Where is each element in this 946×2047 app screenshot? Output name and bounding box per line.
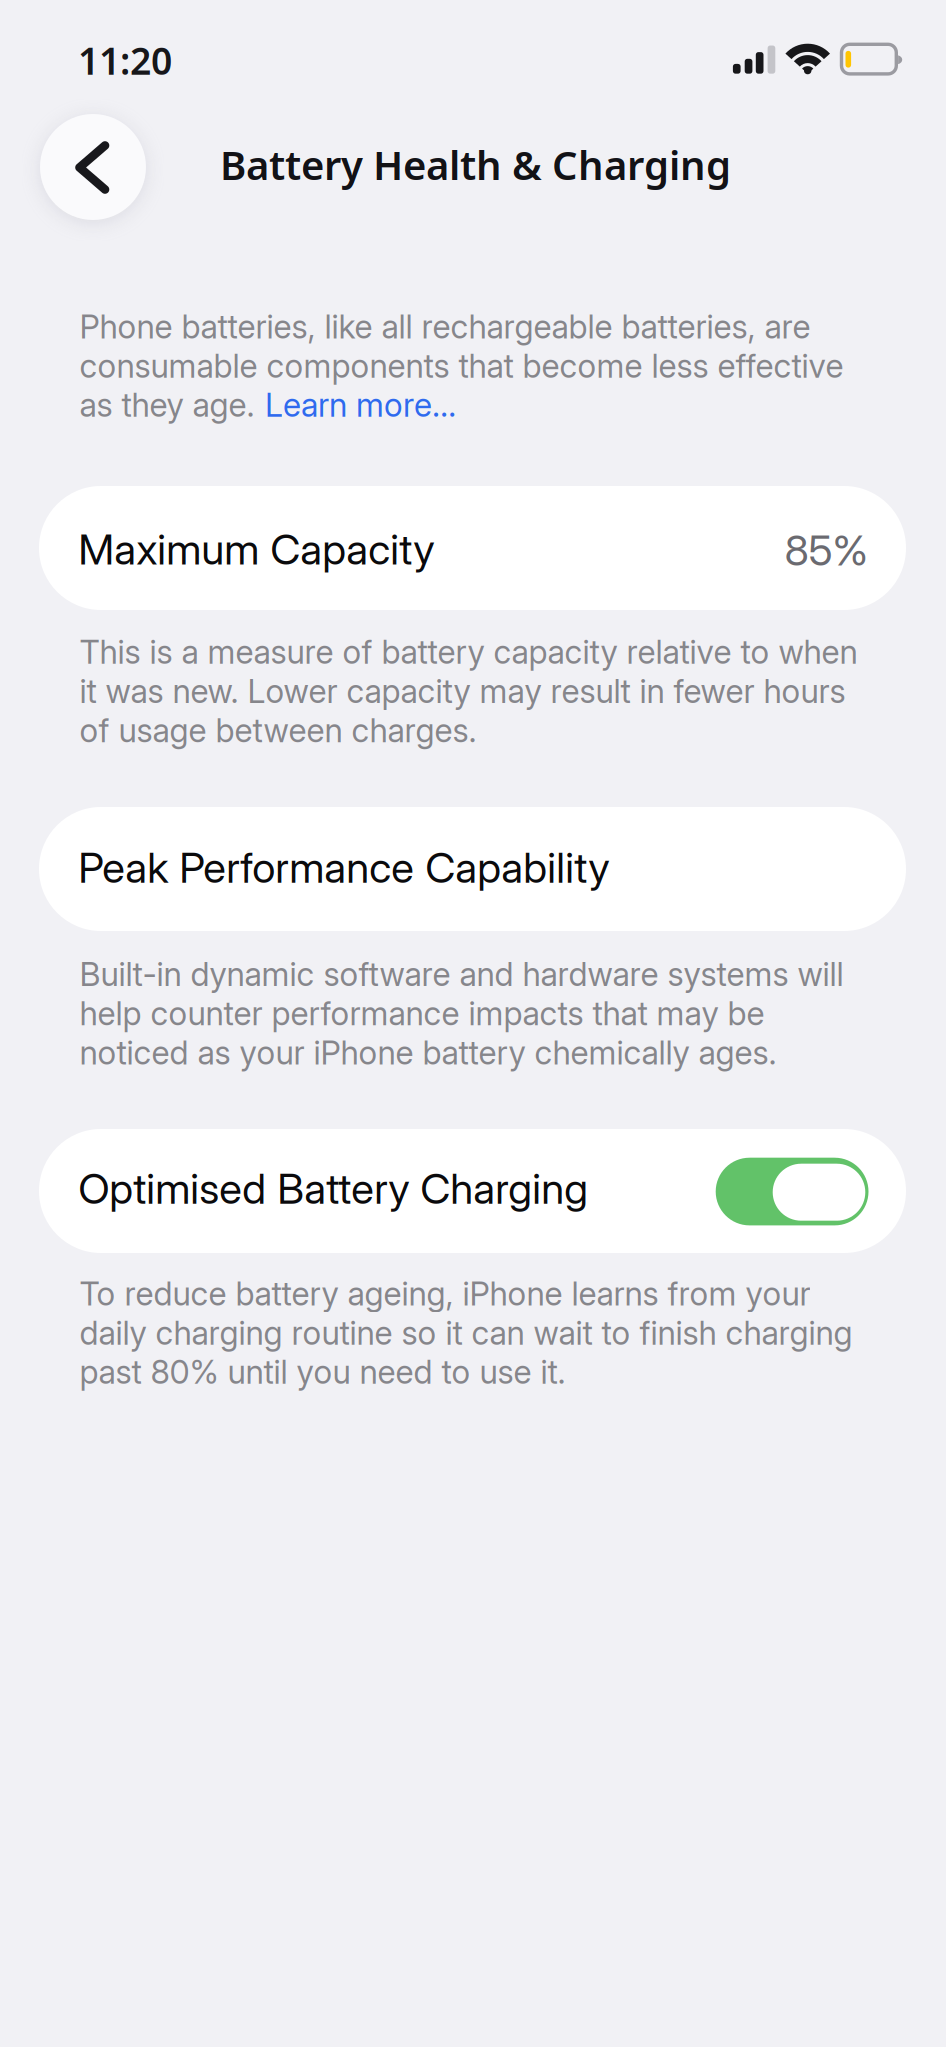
staticText: consumable components that become less e… (79, 346, 843, 385)
staticText: Learn more… (265, 385, 456, 425)
staticText: Built-in dynamic software and hardware s… (79, 955, 843, 994)
button[interactable]: Optimised Battery Charging (0, 0, 867, 124)
staticText: This is a measure of battery capacity re… (79, 632, 857, 672)
staticText: Battery Health & Charging (220, 138, 731, 191)
staticText: 11:20 (78, 35, 172, 85)
staticText: Optimised Battery Charging (78, 1163, 588, 1214)
staticText: help counter performance impacts that ma… (79, 994, 764, 1033)
button[interactable]: Maximum Capacity (0, 0, 867, 124)
staticText: past 80% until you need to use it. (79, 1352, 565, 1392)
staticText: Peak Performance Capability (78, 842, 609, 893)
staticText: daily charging routine so it can wait to… (79, 1313, 852, 1352)
staticText: of usage between charges. (79, 711, 476, 750)
staticText: Maximum Capacity (78, 524, 434, 575)
staticText: To reduce battery ageing, iPhone learns … (79, 1274, 810, 1313)
button[interactable]: Back (40, 114, 146, 220)
button[interactable]: Peak Performance Capability (0, 0, 867, 124)
staticText: it was new. Lower capacity may result in… (79, 671, 845, 711)
staticText: 85% (784, 525, 868, 576)
staticText: noticed as your iPhone battery chemicall… (79, 1033, 776, 1072)
staticText: as they age. (79, 385, 254, 425)
staticText: Phone batteries, like all rechargeable b… (79, 307, 810, 346)
